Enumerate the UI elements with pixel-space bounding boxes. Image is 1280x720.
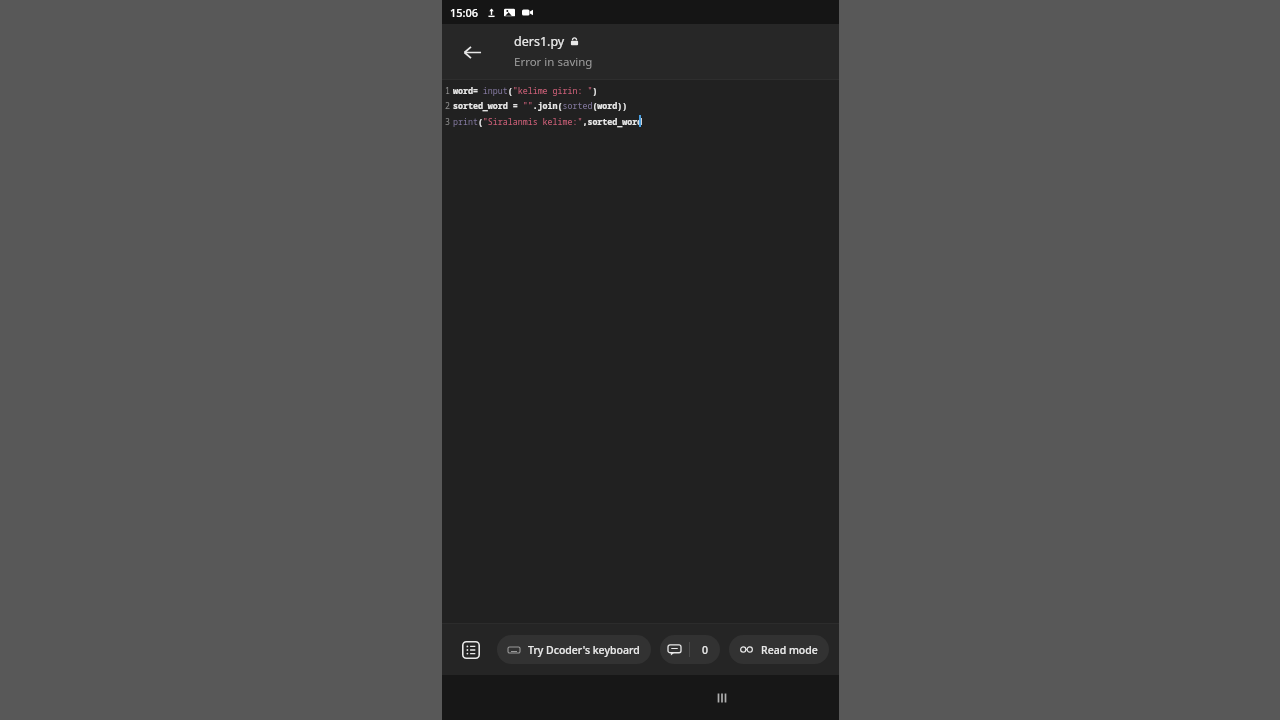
button[interactable]: 0 [660,635,720,664]
staticText: Try Dcoder's keyboard [528,643,640,657]
staticText: word= input("kelime girin: ") [453,85,598,96]
staticText: print("Siralanmis kelime:",sorted_word [453,116,643,127]
staticText: ders1.py [514,33,565,50]
staticText: 3 [445,116,450,127]
button[interactable]: Outline [454,633,488,667]
button[interactable]: Back [450,30,494,74]
staticText: Error in saving [514,54,593,70]
button[interactable]: Read mode [729,635,829,664]
button[interactable]: Try Dcoder's keyboard [497,635,651,664]
staticText: 2 [445,100,450,111]
staticText: 15:06 [450,5,479,20]
button[interactable]: Recents [702,678,742,718]
staticText: 0 [702,643,709,657]
staticText: sorted_word = "".join(sorted(word)) [453,100,628,111]
staticText: Read mode [761,643,818,657]
staticText: 1 [445,85,450,96]
